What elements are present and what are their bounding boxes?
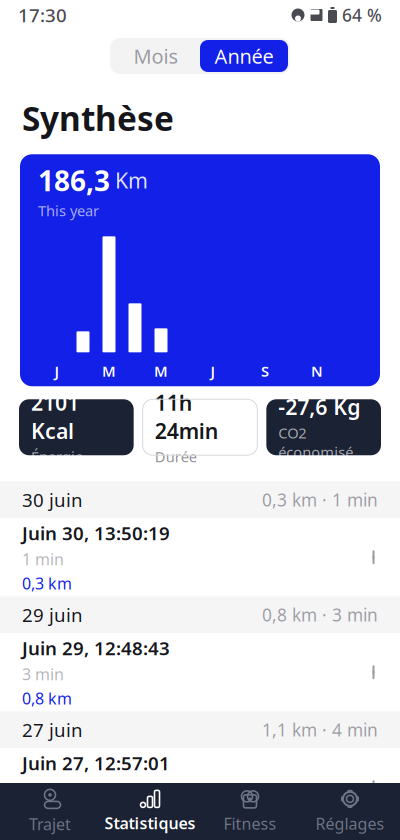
staticText: M xyxy=(102,361,116,381)
button[interactable]: Année xyxy=(200,40,288,72)
staticText: This year xyxy=(38,201,99,220)
staticText: Mois xyxy=(133,43,178,69)
staticText: 1,1 km xyxy=(22,803,72,824)
button[interactable]: 11h 24min xyxy=(143,399,257,455)
staticText: N xyxy=(311,361,323,381)
button[interactable]: Trajet xyxy=(0,783,100,840)
staticText: 29 juin xyxy=(22,602,83,627)
button[interactable]: Statistiques xyxy=(100,783,200,840)
button[interactable]: Juin 27, 12:57:01 xyxy=(0,748,400,826)
staticText: 186,3 xyxy=(38,162,110,199)
staticText: 1 min xyxy=(22,548,64,570)
staticText: Réglages xyxy=(315,813,384,834)
staticText: Juin 27, 12:57:01 xyxy=(22,751,170,775)
staticText: 3 min xyxy=(22,663,64,685)
staticText: 0,3 km · 1 min xyxy=(262,488,378,511)
staticText: 27 juin xyxy=(22,717,83,742)
button[interactable]: -27,6 Kg xyxy=(266,399,381,455)
staticText: Année xyxy=(214,43,273,69)
staticText: 17:30 xyxy=(18,3,67,27)
staticText: Juin 29, 12:48:43 xyxy=(22,636,170,660)
staticText: 64 % xyxy=(342,3,382,26)
staticText: 0,8 km xyxy=(22,688,72,709)
staticText: 0,8 km · 3 min xyxy=(262,603,378,626)
staticText: 0,3 km xyxy=(22,573,72,594)
staticText: 2101 Kcal xyxy=(31,388,79,445)
button[interactable]: 2101 Kcal xyxy=(19,399,134,455)
button[interactable]: Mois xyxy=(112,40,200,72)
staticText: J xyxy=(54,361,59,381)
staticText: Km xyxy=(115,166,148,194)
button[interactable]: Réglages xyxy=(300,783,400,840)
staticText: 1,1 km · 4 min xyxy=(262,718,378,741)
staticText: Trajet xyxy=(29,813,71,835)
staticText: 11h 24min xyxy=(155,388,219,445)
staticText: -27,6 Kg xyxy=(278,393,360,421)
staticText: Statistiques xyxy=(104,812,195,834)
staticText: Fitness xyxy=(223,813,276,834)
staticText: J xyxy=(210,361,215,381)
staticText: CO2 économisé xyxy=(278,423,353,462)
staticText: Durée xyxy=(155,447,197,466)
button[interactable]: Fitness xyxy=(200,783,300,840)
staticText: Synthèse xyxy=(22,96,174,140)
staticText: S xyxy=(261,361,269,381)
button[interactable]: Juin 30, 13:50:19 xyxy=(0,518,400,596)
staticText: 4 min xyxy=(22,778,64,800)
staticText: 30 juin xyxy=(22,487,83,512)
staticText: Énergie xyxy=(31,447,83,466)
staticText: Juin 30, 13:50:19 xyxy=(22,521,170,545)
staticText: M xyxy=(154,361,168,381)
button[interactable]: Juin 29, 12:48:43 xyxy=(0,633,400,711)
